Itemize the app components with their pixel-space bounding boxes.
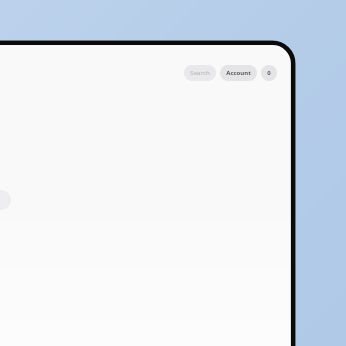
staticText: 0 [267,69,271,77]
button[interactable]: Sidebar item [0,190,11,210]
button[interactable]: Account [220,65,257,81]
staticText: Account [226,69,251,77]
button[interactable]: Search [184,65,216,81]
button[interactable]: 0 [261,65,277,81]
staticText: Search [190,69,210,77]
